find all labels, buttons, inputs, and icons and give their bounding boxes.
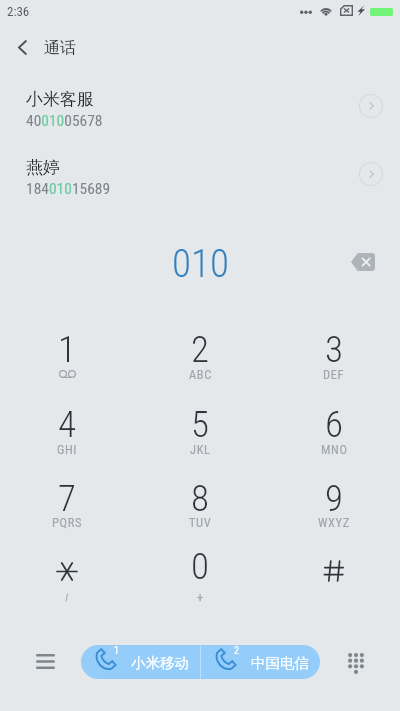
staticText: 6	[325, 403, 343, 446]
button[interactable]: Dialpad	[334, 648, 378, 678]
staticText: PQRS	[52, 515, 82, 529]
button[interactable]: Delete	[346, 245, 380, 279]
button[interactable]: 5	[144, 387, 256, 461]
staticText: 4	[58, 403, 76, 446]
button[interactable]: 4	[11, 387, 123, 461]
staticText: 010	[172, 241, 229, 285]
staticText: 3	[325, 328, 343, 371]
button[interactable]	[278, 529, 390, 603]
staticText: TUV	[189, 515, 212, 529]
staticText: +	[197, 590, 204, 604]
staticText: 2:36	[7, 4, 30, 19]
staticText: 7	[58, 477, 76, 520]
staticText: 5	[191, 403, 209, 446]
staticText: JKL	[190, 442, 211, 456]
staticText: 9	[325, 477, 343, 520]
button[interactable]: 1	[11, 312, 123, 386]
button[interactable]: Call log menu	[23, 646, 67, 676]
button[interactable]: 8	[144, 461, 256, 535]
staticText: 小米移动	[131, 654, 189, 672]
staticText: 4001005678	[26, 112, 103, 130]
button[interactable]: 6	[278, 387, 390, 461]
staticText: 1	[114, 645, 119, 657]
button[interactable]: 小米客服	[0, 86, 400, 132]
staticText: ABC	[189, 367, 212, 381]
button[interactable]: 燕婷	[0, 154, 400, 200]
button[interactable]: 1	[81, 645, 200, 679]
staticText: 小米客服	[26, 89, 94, 110]
button[interactable]: Back	[0, 25, 44, 69]
staticText: 2	[191, 328, 209, 371]
staticText: GHI	[57, 442, 78, 456]
staticText: DEF	[323, 367, 345, 381]
staticText: 2	[234, 645, 239, 657]
button[interactable]: 0	[144, 529, 256, 603]
staticText: 0	[191, 545, 209, 588]
button[interactable]: 7	[11, 461, 123, 535]
button[interactable]: 3	[278, 312, 390, 386]
staticText: 18401015689	[26, 180, 111, 198]
staticText: WXYZ	[318, 515, 350, 529]
button[interactable]: 2	[144, 312, 256, 386]
staticText: 8	[191, 477, 209, 520]
staticText: MNO	[321, 442, 348, 456]
button[interactable]: 9	[278, 461, 390, 535]
staticText: 1	[58, 328, 76, 371]
button[interactable]: 2	[201, 645, 320, 679]
staticText: 燕婷	[26, 157, 60, 178]
staticText: 通话	[44, 38, 76, 58]
staticText: 中国电信	[251, 654, 309, 672]
button[interactable]	[11, 529, 123, 603]
